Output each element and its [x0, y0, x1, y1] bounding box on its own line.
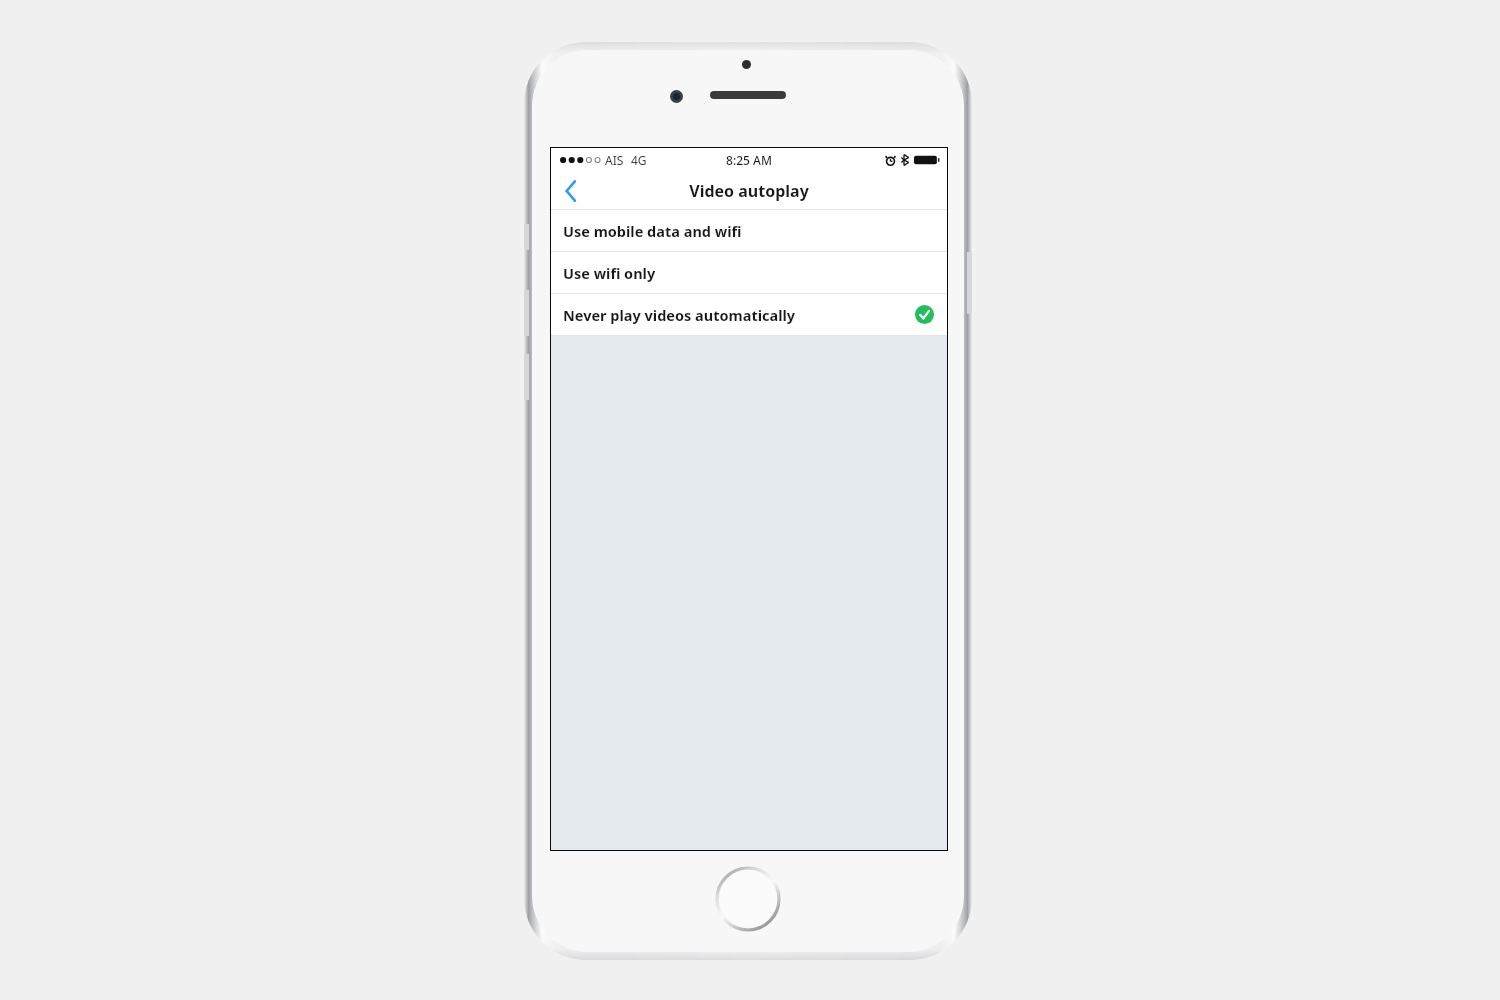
staticText: 4G [631, 152, 647, 168]
button[interactable]: Never play videos automatically [551, 294, 947, 335]
staticText: 8:25 AM [726, 152, 772, 168]
staticText: Video autoplay [689, 180, 809, 202]
button[interactable]: Use mobile data and wifi [551, 210, 947, 251]
staticText: AIS [605, 152, 624, 168]
staticText: Use mobile data and wifi [563, 221, 934, 241]
staticText: Never play videos automatically [563, 305, 915, 325]
button[interactable]: Use wifi only [551, 252, 947, 293]
staticText: Use wifi only [563, 263, 934, 283]
button[interactable]: Home [714, 865, 782, 933]
button[interactable]: Back [551, 172, 591, 209]
